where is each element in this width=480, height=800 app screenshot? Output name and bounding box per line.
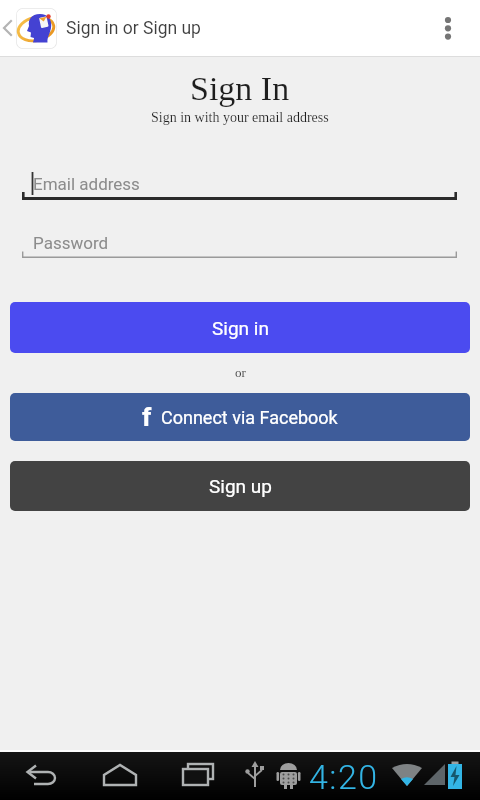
button[interactable] (0, 752, 80, 800)
staticText: 4:20 (309, 757, 379, 797)
staticText: Email address (33, 174, 140, 194)
button[interactable]: Sign in (10, 302, 470, 353)
staticText: Password (33, 233, 109, 253)
staticText: or (235, 365, 246, 379)
button[interactable]: f (10, 393, 470, 441)
button[interactable]: Email address (0, 155, 480, 200)
button[interactable]: Sign up (10, 461, 470, 511)
button[interactable] (160, 752, 240, 800)
staticText: f (142, 402, 152, 432)
button[interactable] (432, 0, 480, 56)
staticText: Connect via Facebook (161, 407, 338, 428)
button[interactable] (80, 752, 160, 800)
staticText: Sign in with your email address (151, 110, 329, 126)
staticText: Sign in or Sign up (66, 18, 201, 39)
staticText: Sign In (190, 70, 290, 108)
button[interactable]: Sign in or Sign up (16, 8, 201, 49)
staticText: Sign up (209, 475, 272, 497)
button[interactable]: Password (0, 218, 480, 258)
staticText: Sign in (212, 317, 269, 339)
